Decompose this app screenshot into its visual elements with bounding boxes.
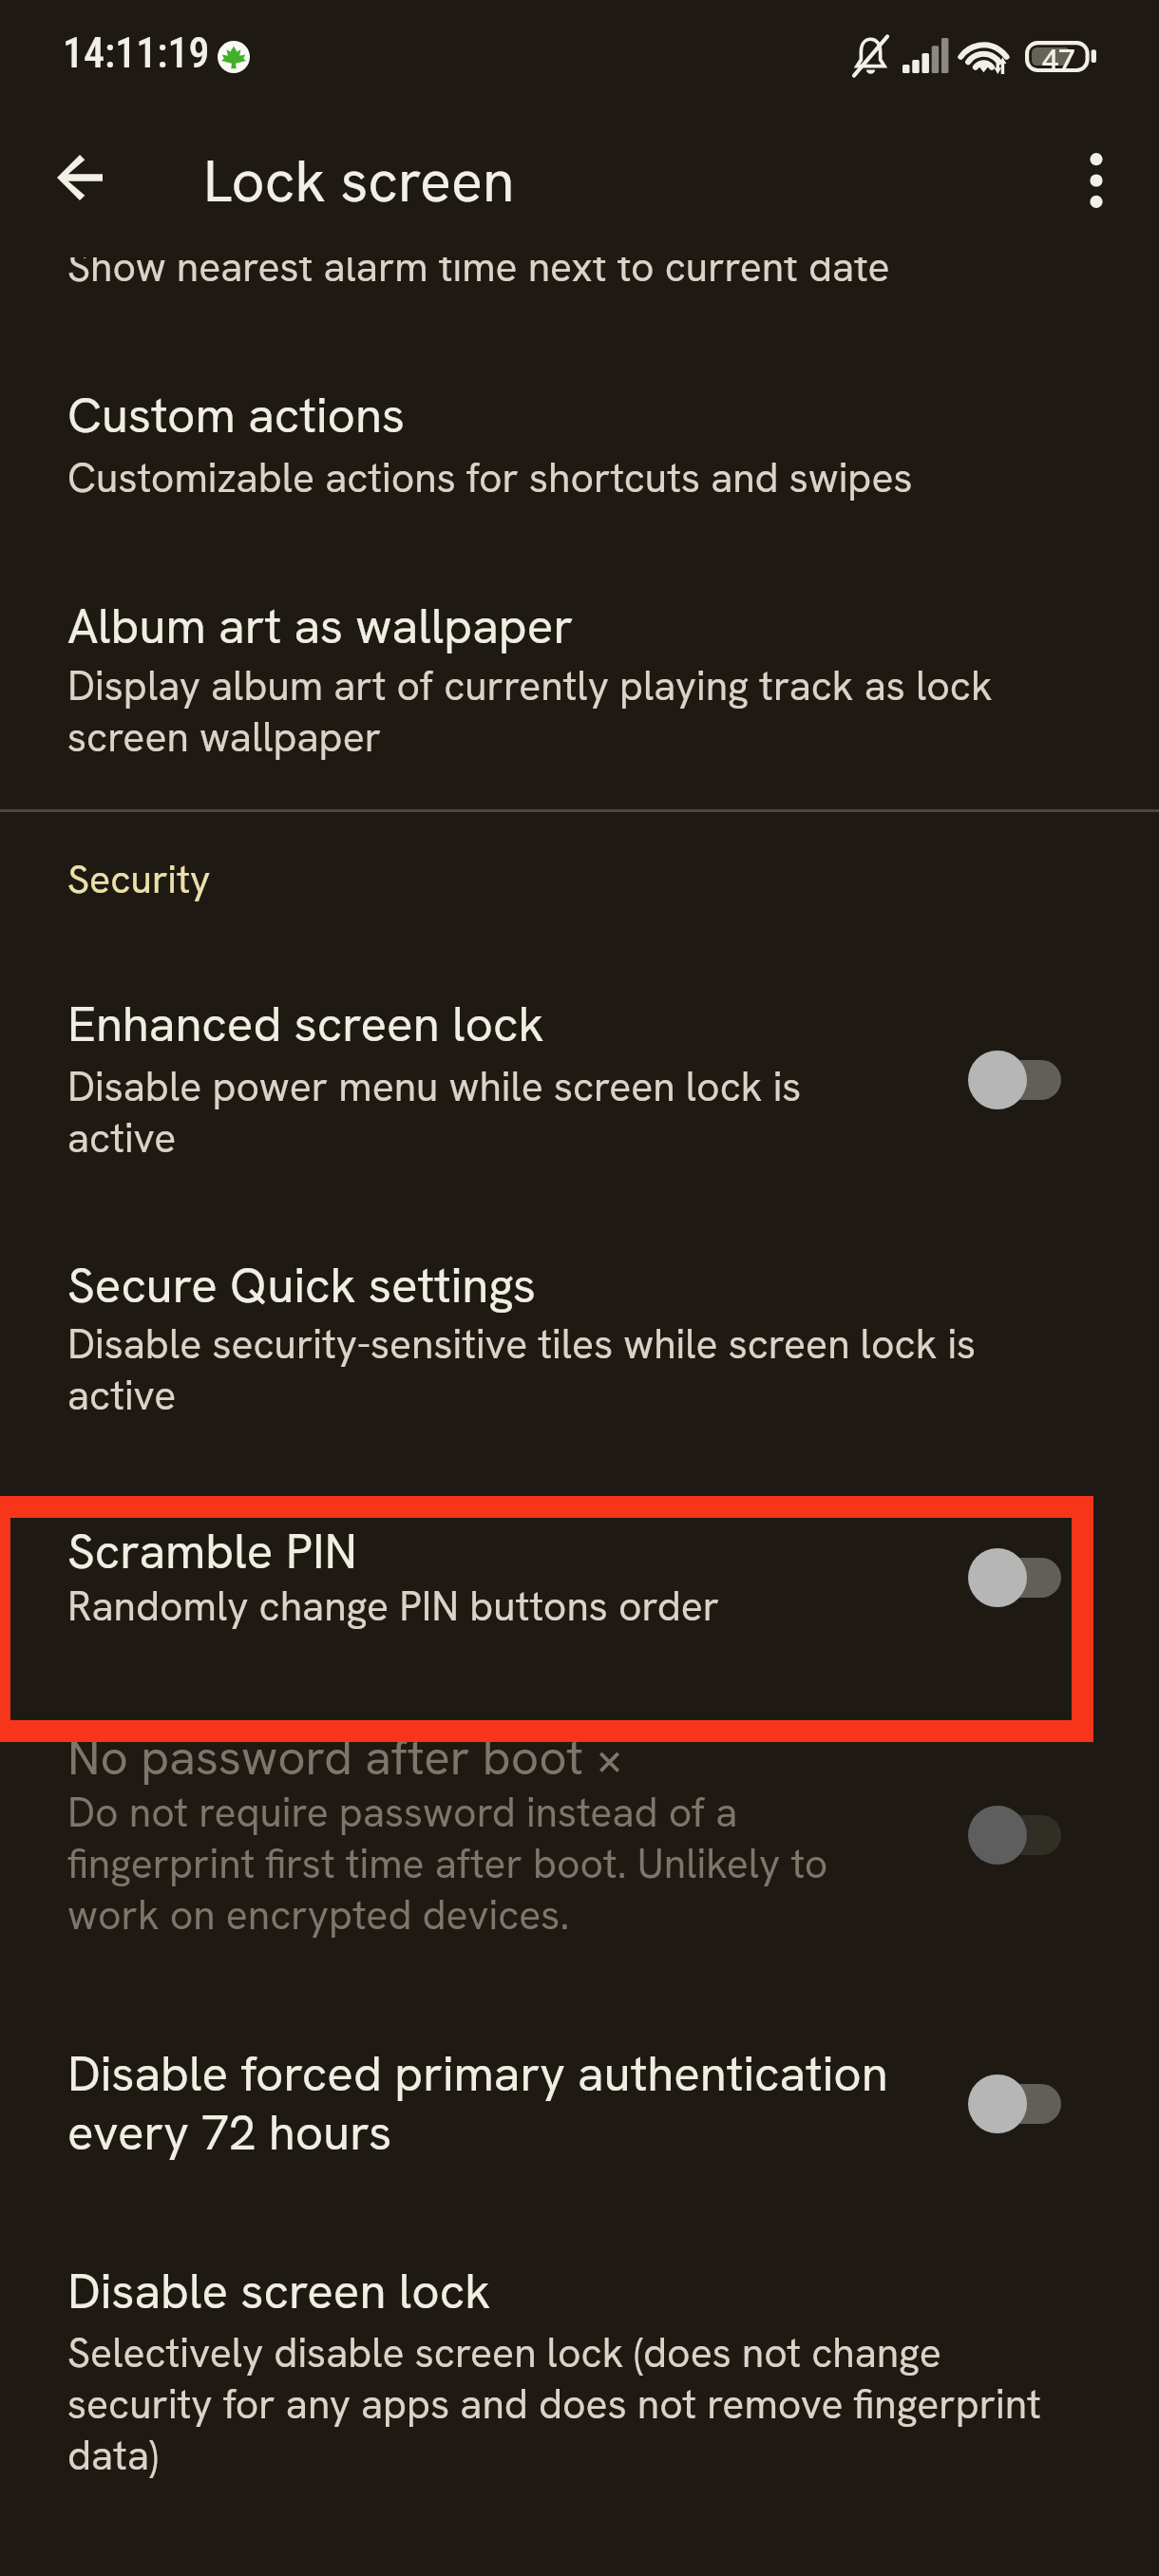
button[interactable]: Disable forced primary authentication ev… [940,2058,1092,2150]
staticText: Album art as wallpaper [67,597,1065,656]
button[interactable]: Album art as wallpaper [0,569,1159,790]
staticText: Disable forced primary authentication ev… [67,2045,911,2163]
staticText: Lock screen [203,143,515,218]
button[interactable]: Back [34,132,125,223]
staticText: Disable power menu while screen lock is … [67,1061,911,1164]
staticText: Customizable actions for shortcuts and s… [67,452,1065,503]
staticText: Do not require password instead of a fin… [67,1787,911,1941]
staticText: Randomly change PIN buttons order [67,1581,911,1632]
staticText: Secure Quick settings [67,1257,1065,1316]
staticText: 14:11:19 [63,28,210,78]
button[interactable]: Custom actions [0,358,1159,531]
button[interactable]: Scramble PIN [0,1494,1159,1659]
staticText: No password after boot × [67,1729,911,1788]
staticText: Security [67,854,211,904]
button[interactable]: Disable screen lock [0,2234,1159,2350]
button[interactable]: More options [1051,135,1142,226]
staticText: Disable screen lock [67,2263,1065,2321]
staticText: Enhanced screen lock [67,995,911,1054]
button[interactable]: Scramble PIN toggle, off [940,1532,1092,1623]
button[interactable]: Enhanced screen lock toggle, off [940,1034,1092,1126]
button[interactable]: Disable forced primary authentication ev… [0,2017,1159,2191]
staticText: Disable security-sensitive tiles while s… [67,1318,1065,1421]
staticText: Scramble PIN [67,1523,911,1582]
staticText: Show nearest alarm time next to current … [67,257,1065,293]
button[interactable]: Secure Quick settings [0,1228,1159,1344]
button[interactable]: No password after boot × toggle, off [940,1790,1092,1881]
button[interactable]: No password after boot × [0,1700,1159,1968]
staticText: 47 [1042,41,1075,79]
staticText: Selectively disable screen lock (does no… [67,2327,1065,2481]
staticText: Display album art of currently playing t… [67,660,1065,763]
staticText: Custom actions [67,387,1065,445]
button[interactable]: Show nearest alarm time [0,257,1159,313]
button[interactable]: Enhanced screen lock [0,967,1159,1191]
